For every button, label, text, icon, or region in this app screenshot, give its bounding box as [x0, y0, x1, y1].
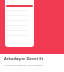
staticText: Arkadaşını Davet Et [4, 56, 44, 61]
staticText: Arkadaşını davet et, sen de kazan. [4, 63, 44, 66]
